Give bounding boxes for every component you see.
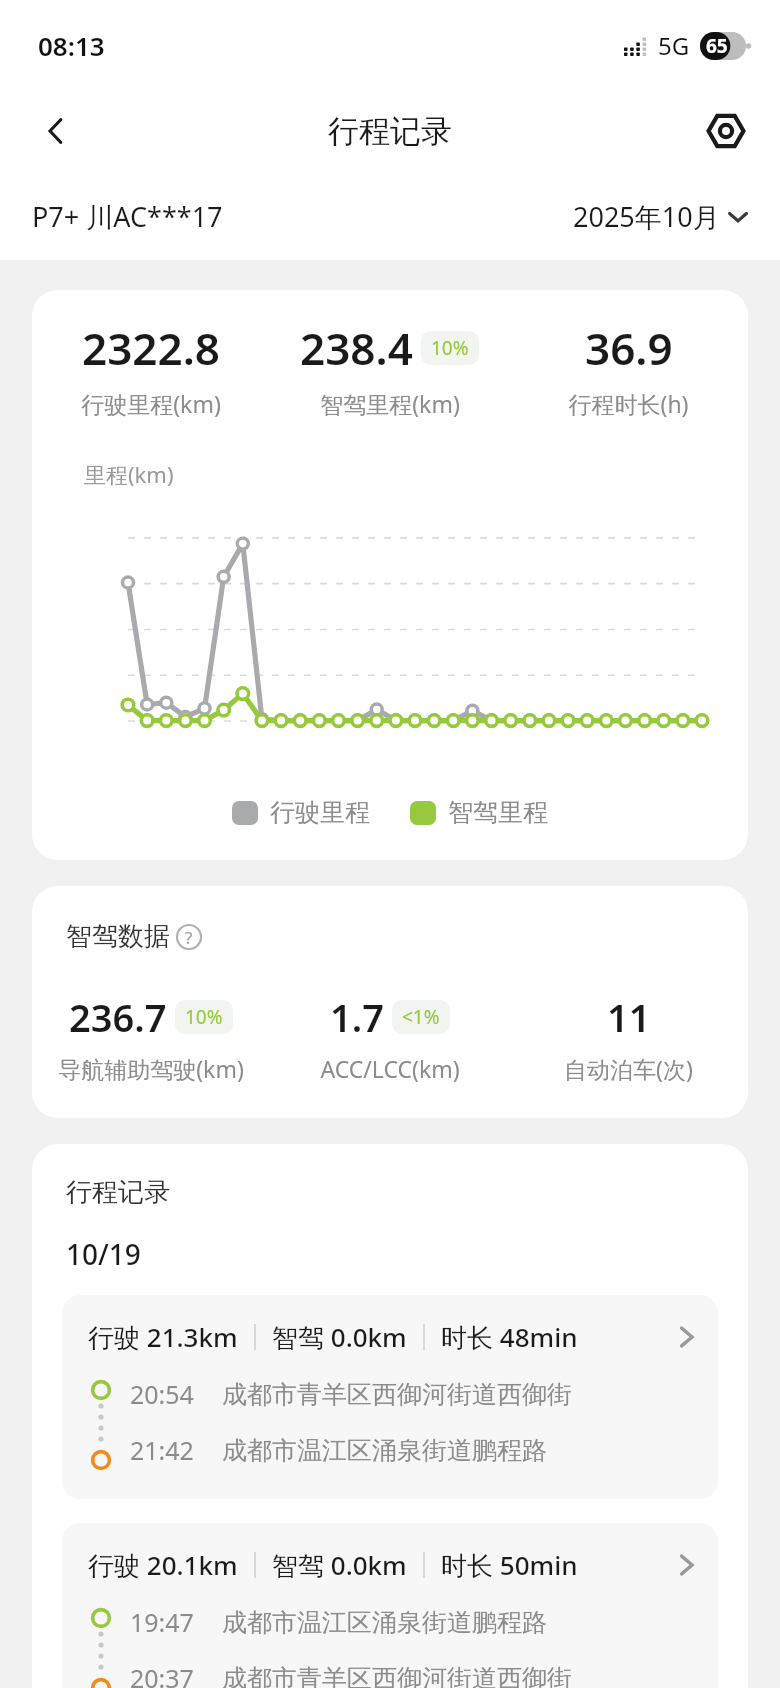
staticText: 导航辅助驾驶(km) xyxy=(58,1053,244,1084)
button[interactable]: Settings xyxy=(698,103,754,159)
staticText: ? xyxy=(185,926,193,949)
staticText: 智驾里程 xyxy=(448,797,548,828)
staticText: 智驾 0.0km xyxy=(272,1547,407,1583)
button[interactable]: 行驶 21.3km xyxy=(62,1295,718,1499)
staticText: 2025年10月 xyxy=(573,198,720,235)
staticText: <1% xyxy=(402,1004,440,1030)
staticText: 10/19 xyxy=(66,1235,141,1273)
staticText: 里程(km) xyxy=(84,459,174,489)
staticText: 10% xyxy=(185,1004,223,1030)
staticText: 行驶里程 xyxy=(270,797,370,828)
staticText: 智驾数据 xyxy=(66,920,170,953)
staticText: 36.9 xyxy=(585,318,673,378)
staticText: 08:13 xyxy=(38,28,105,63)
staticText: 成都市青羊区西御河街道西御街 xyxy=(222,1663,572,1688)
button[interactable]: Help xyxy=(176,924,202,950)
staticText: 236.7 xyxy=(69,991,167,1043)
button[interactable]: 2025年10月 xyxy=(573,198,748,235)
staticText: 10% xyxy=(431,335,469,361)
staticText: 11 xyxy=(607,991,651,1043)
staticText: 行程记录 xyxy=(66,1176,170,1209)
staticText: 238.4 xyxy=(300,318,413,378)
staticText: P7+ 川AC***17 xyxy=(32,198,223,235)
staticText: 行驶 21.3km xyxy=(88,1319,238,1355)
staticText: 2322.8 xyxy=(82,318,220,378)
staticText: 21:42 xyxy=(130,1433,194,1467)
staticText: 行驶 20.1km xyxy=(88,1547,238,1583)
staticText: 智驾 0.0km xyxy=(272,1319,407,1355)
staticText: 时长 48min xyxy=(441,1319,578,1355)
staticText: 20:54 xyxy=(130,1377,194,1411)
staticText: 5G xyxy=(658,29,690,62)
button[interactable]: 行驶 20.1km xyxy=(62,1523,718,1688)
staticText: 行程记录 xyxy=(328,112,452,151)
staticText: 20:37 xyxy=(130,1661,194,1688)
staticText: 行程时长(h) xyxy=(568,388,689,419)
staticText: 智驾里程(km) xyxy=(320,388,460,419)
staticText: 成都市温江区涌泉街道鹏程路 xyxy=(222,1607,547,1638)
staticText: ACC/LCC(km) xyxy=(320,1053,460,1084)
staticText: 成都市温江区涌泉街道鹏程路 xyxy=(222,1435,547,1466)
staticText: 19:47 xyxy=(130,1605,194,1639)
staticText: 自动泊车(次) xyxy=(564,1053,693,1084)
staticText: 1.7 xyxy=(330,991,384,1043)
button[interactable]: Back xyxy=(28,103,84,159)
staticText: 65 xyxy=(706,33,728,59)
staticText: 成都市青羊区西御河街道西御街 xyxy=(222,1379,572,1410)
staticText: 行驶里程(km) xyxy=(81,388,221,419)
staticText: 时长 50min xyxy=(441,1547,578,1583)
